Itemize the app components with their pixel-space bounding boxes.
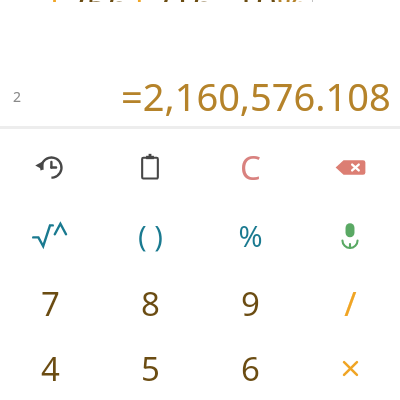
staticText: %	[238, 216, 263, 255]
staticText: 8	[141, 281, 160, 326]
button[interactable]: +256+216−10%	[0, 0, 400, 24]
staticText: 7	[41, 281, 60, 326]
button[interactable]: 8	[100, 269, 200, 337]
button[interactable]: /	[300, 269, 400, 337]
button[interactable]: %	[200, 201, 300, 269]
button[interactable]: 4	[0, 337, 100, 400]
button[interactable]: C	[200, 133, 300, 201]
button[interactable]: 5	[100, 337, 200, 400]
staticText: 9	[241, 281, 260, 326]
staticText: 2	[13, 87, 22, 106]
button[interactable]: History	[0, 133, 100, 201]
button[interactable]	[300, 337, 400, 400]
staticText: C	[240, 145, 261, 190]
button[interactable]: 7	[0, 269, 100, 337]
staticText: /	[344, 281, 357, 326]
staticText: 4	[41, 346, 60, 391]
staticText: 6	[241, 346, 260, 391]
staticText: 5	[141, 346, 160, 391]
button[interactable]: 6	[200, 337, 300, 400]
button[interactable]: 2	[0, 70, 400, 122]
button[interactable]: Backspace	[300, 133, 400, 201]
button[interactable]: Paste from clipboard	[100, 133, 200, 201]
button[interactable]	[0, 201, 100, 269]
button[interactable]: Voice input	[300, 201, 400, 269]
staticText: =2,160,576.108	[121, 70, 391, 122]
staticText: ( )	[138, 216, 163, 255]
button[interactable]: 9	[200, 269, 300, 337]
button[interactable]: ( )	[100, 201, 200, 269]
staticText: +256+216−10%	[44, 0, 308, 2]
